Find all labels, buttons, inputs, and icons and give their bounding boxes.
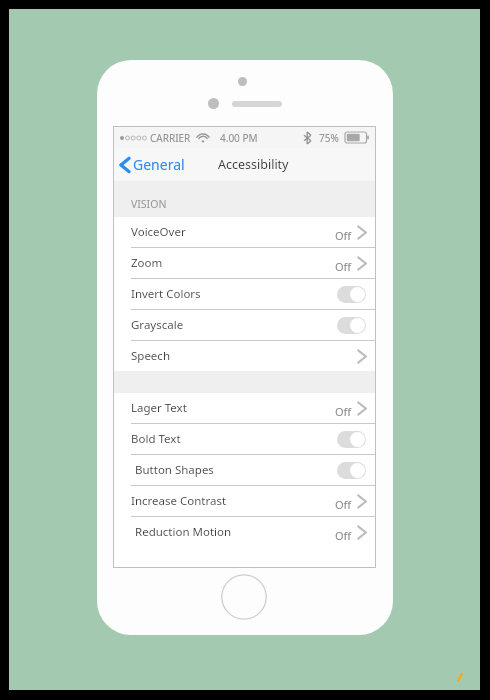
staticText: Button Shapes <box>135 462 214 478</box>
button[interactable]: Zoom <box>114 248 375 278</box>
staticText: Off <box>335 528 352 543</box>
button[interactable]: Reduction Motion <box>114 517 375 547</box>
staticText: Increase Contrast <box>131 493 227 509</box>
button[interactable]: Grayscale <box>114 310 375 340</box>
button[interactable]: Invert Colors switch, off <box>337 286 366 303</box>
staticText: Off <box>335 259 352 274</box>
button[interactable]: Increase Contrast <box>114 486 375 516</box>
button[interactable]: Speech <box>114 341 375 371</box>
staticText: Grayscale <box>131 317 184 333</box>
button[interactable]: Invert Colors <box>114 279 375 309</box>
button[interactable]: Lager Text <box>114 393 375 423</box>
staticText: VISION <box>131 197 167 211</box>
staticText: Reduction Motion <box>135 524 232 540</box>
staticText: Zoom <box>131 255 163 271</box>
staticText: 4.00 PM <box>220 131 258 145</box>
button[interactable]: VoiceOver <box>114 217 375 247</box>
staticText: Invert Colors <box>131 286 201 302</box>
staticText: 75% <box>319 131 339 145</box>
staticText: Speech <box>131 348 170 364</box>
button[interactable]: Button Shapes switch, off <box>337 462 366 479</box>
staticText: Off <box>335 404 352 419</box>
staticText: CARRIER <box>150 131 191 145</box>
staticText: Off <box>335 497 352 512</box>
staticText: Bold Text <box>131 431 181 447</box>
button[interactable]: Bold Text switch, off <box>337 431 366 448</box>
button[interactable]: Button Shapes <box>114 455 375 485</box>
button[interactable]: Bold Text <box>114 424 375 454</box>
button[interactable]: General <box>114 151 191 178</box>
staticText: VoiceOver <box>131 224 186 240</box>
staticText: Accessibility <box>218 156 289 173</box>
button[interactable]: Grayscale switch, off <box>337 317 366 334</box>
staticText: General <box>133 155 185 174</box>
staticText: Lager Text <box>131 400 187 416</box>
staticText: Off <box>335 228 352 243</box>
